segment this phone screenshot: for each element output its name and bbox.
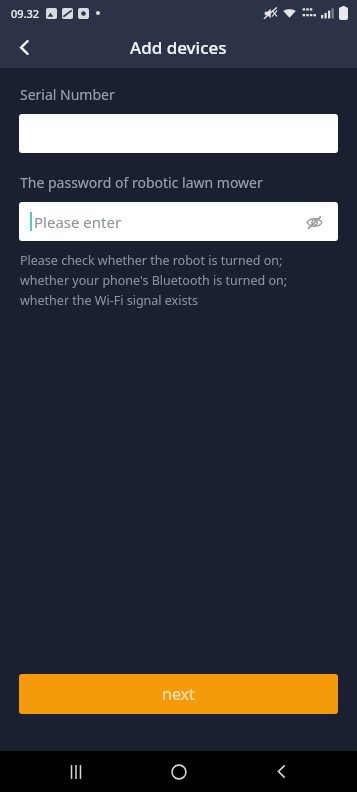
staticText: whether your phone's Bluetooth is turned…	[20, 272, 288, 289]
button[interactable]	[19, 114, 338, 153]
button[interactable]: Back	[6, 29, 42, 65]
staticText: Please check whether the robot is turned…	[20, 252, 283, 269]
button[interactable]: Recent apps	[50, 751, 102, 792]
staticText: whether the Wi-Fi signal exists	[20, 292, 198, 309]
staticText: Add devices	[130, 36, 227, 59]
button[interactable]: Please enter	[19, 202, 338, 241]
staticText: Please enter	[34, 212, 122, 232]
staticText: 09.32	[11, 6, 40, 21]
button[interactable]: Show password	[300, 208, 328, 236]
button[interactable]: Back	[255, 751, 307, 792]
button[interactable]: next	[19, 674, 338, 714]
staticText: The password of robotic lawn mower	[20, 173, 263, 192]
staticText: next	[162, 683, 195, 705]
staticText: Serial Number	[20, 85, 115, 104]
button[interactable]: Home	[153, 751, 205, 792]
